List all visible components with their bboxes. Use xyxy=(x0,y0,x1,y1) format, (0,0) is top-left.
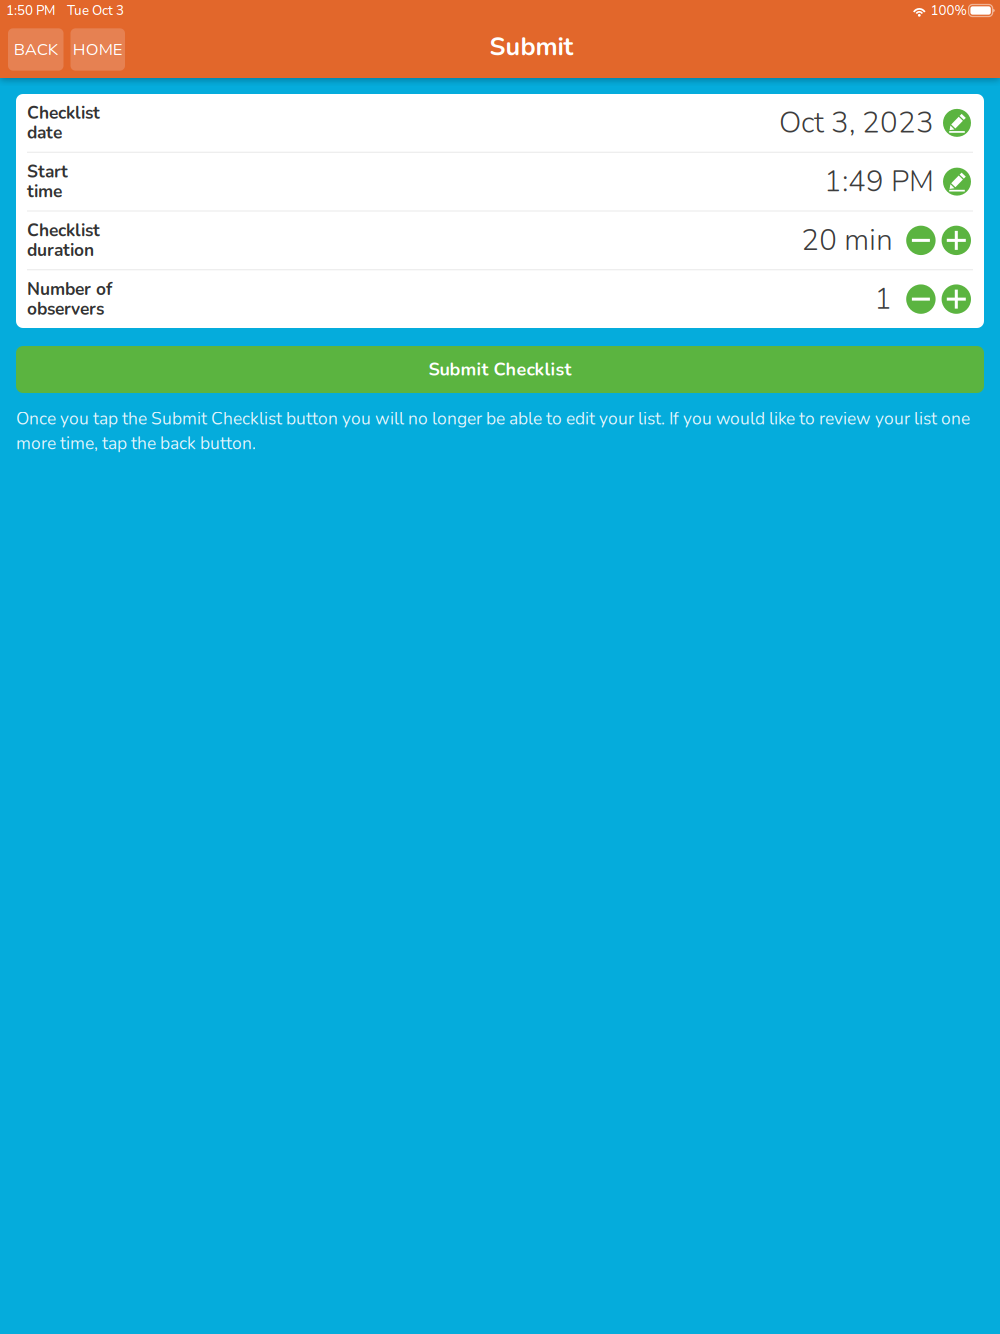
staticText: HOME xyxy=(73,38,123,61)
staticText: Checklist date xyxy=(27,101,100,144)
button[interactable]: Edit Start time xyxy=(943,168,971,196)
staticText: Number of observers xyxy=(27,277,112,321)
staticText: 100% xyxy=(931,1,967,20)
staticText: Submit xyxy=(489,30,573,64)
staticText: Checklist duration xyxy=(27,219,100,262)
staticText: 1:49 PM xyxy=(824,162,934,202)
staticText: 20 min xyxy=(801,220,892,260)
button[interactable]: Increase Checklist duration xyxy=(942,226,971,255)
button[interactable]: Decrease Number of observers xyxy=(906,284,936,314)
staticText: Tue Oct 3 xyxy=(67,1,124,20)
staticText: BACK xyxy=(14,38,58,61)
staticText: Once you tap the Submit Checklist button… xyxy=(16,407,970,455)
button[interactable]: Edit Checklist date xyxy=(943,109,971,137)
button[interactable]: HOME xyxy=(70,28,125,71)
staticText: 1:50 PM xyxy=(6,1,55,20)
button[interactable]: Submit Checklist xyxy=(16,346,984,393)
staticText: Oct 3, 2023 xyxy=(779,103,934,143)
staticText: 1 xyxy=(874,279,892,319)
staticText: Start time xyxy=(27,160,68,203)
button[interactable]: BACK xyxy=(8,28,63,71)
button[interactable]: Decrease Checklist duration xyxy=(906,226,936,255)
staticText: Submit Checklist xyxy=(428,357,571,382)
button[interactable]: Increase Number of observers xyxy=(942,284,971,314)
